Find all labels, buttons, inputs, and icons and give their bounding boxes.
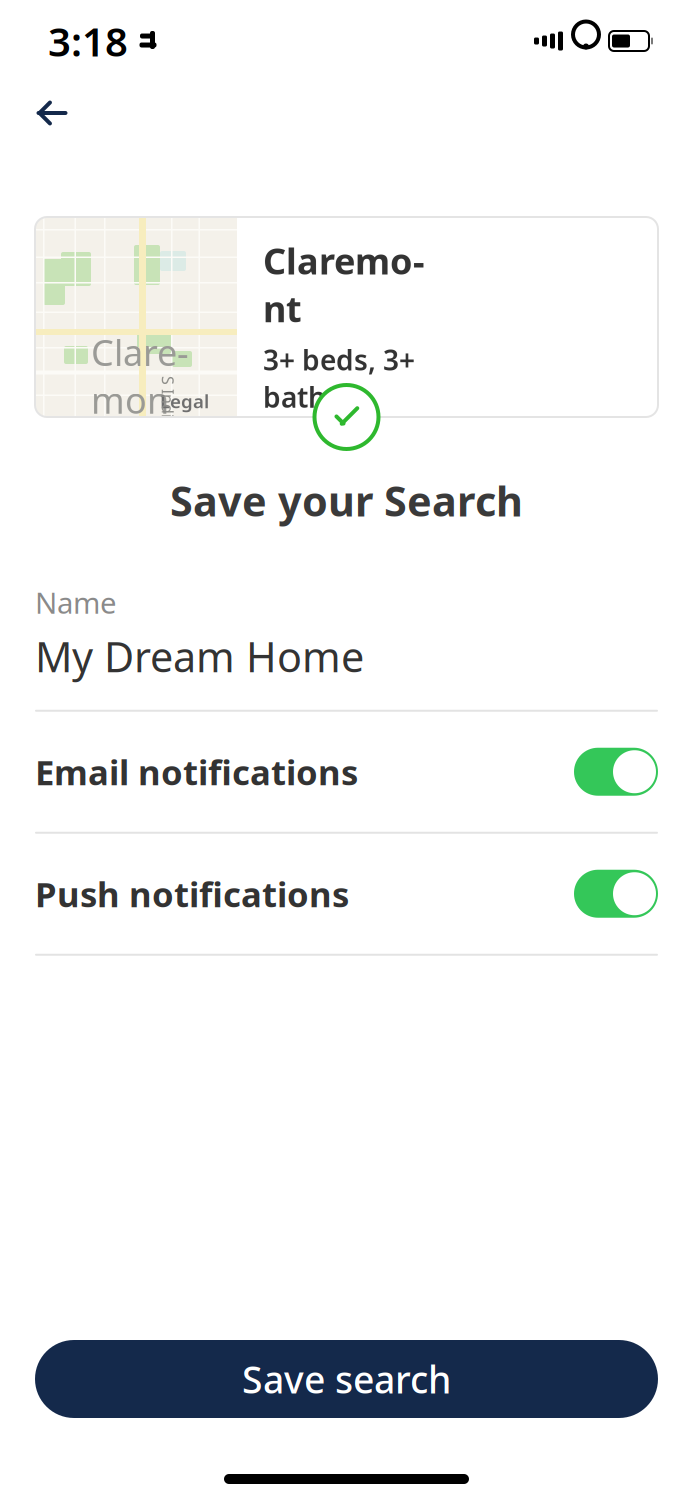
staticText: Email notifications [35, 749, 358, 795]
staticText: Save your Search [170, 473, 523, 528]
staticText: Save search [242, 1354, 451, 1404]
staticText: Legal [160, 389, 209, 413]
staticText: Claremon [91, 328, 189, 424]
staticText: 3:18 [48, 14, 128, 67]
staticText: 3+ beds, 3+ baths [263, 341, 415, 415]
staticText: Claremont [263, 236, 425, 332]
staticText: S Indi [147, 386, 189, 408]
staticText: Push notifications [35, 871, 349, 917]
staticText: My Dream Home [35, 629, 364, 684]
button[interactable]: Back [20, 85, 84, 141]
button[interactable]: Email notifications [0, 712, 693, 832]
button[interactable]: Push notifications [0, 834, 693, 954]
button[interactable]: Save search [35, 1340, 658, 1418]
staticText: Name [35, 583, 117, 622]
